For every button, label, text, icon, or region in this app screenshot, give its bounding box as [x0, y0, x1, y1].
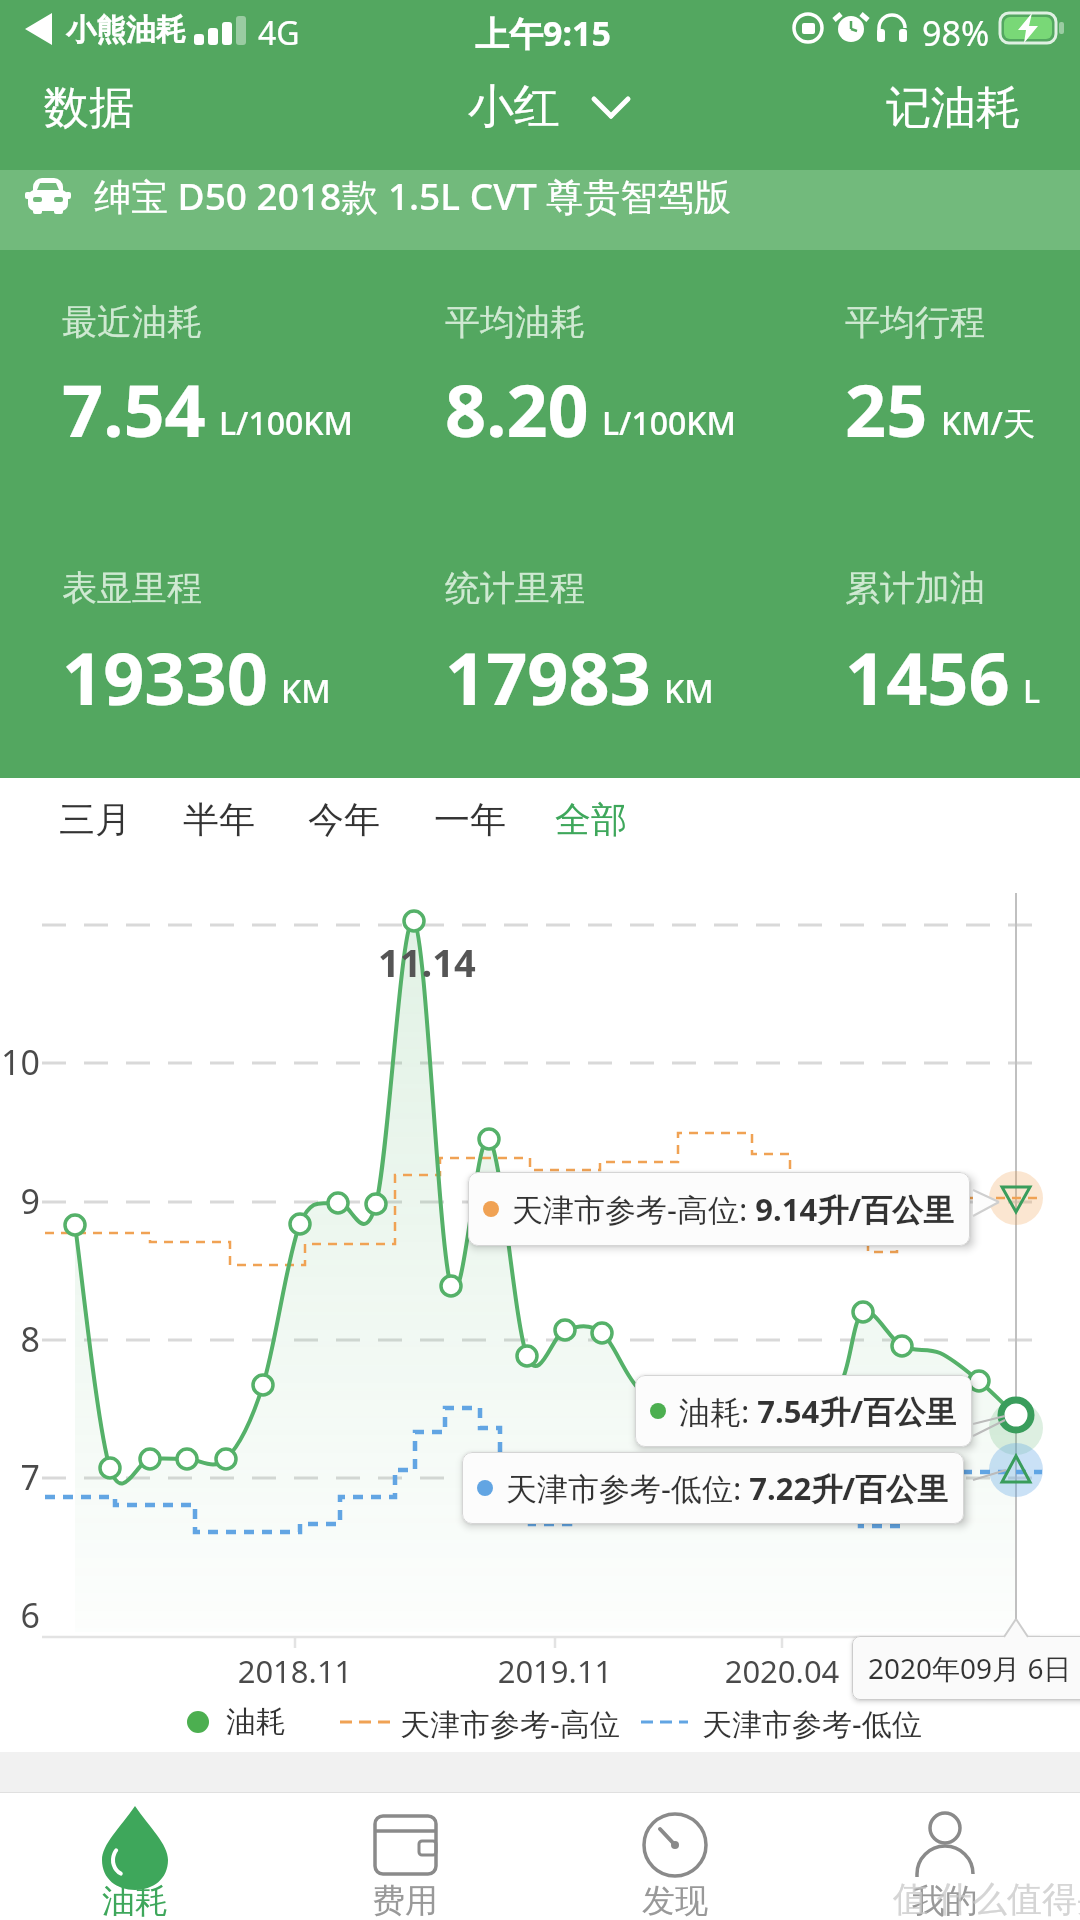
staticText: 9: [0, 1178, 40, 1224]
staticText: 油耗: [55, 1880, 215, 1920]
staticText: 2020年09月 6日: [868, 1649, 1072, 1687]
staticText: 6: [0, 1592, 40, 1638]
staticText: L: [1023, 669, 1041, 713]
staticText: 25: [845, 360, 928, 458]
staticText: 平均油耗: [445, 300, 585, 344]
staticText: 7: [0, 1454, 40, 1500]
staticText: 我的: [865, 1880, 1025, 1920]
staticText: 小红: [468, 78, 560, 136]
staticText: 17983: [445, 628, 651, 726]
staticText: 2019.11: [475, 1650, 635, 1692]
staticText: L/100KM: [219, 401, 353, 445]
staticText: 10: [0, 1039, 40, 1085]
button[interactable]: 三月: [59, 797, 131, 842]
staticText: 数据: [44, 80, 134, 137]
staticText: 半年: [183, 797, 255, 842]
button[interactable]: 数据: [44, 80, 134, 137]
button[interactable]: [845, 1796, 1045, 1918]
staticText: 油耗: 7.54升/百公里: [679, 1390, 957, 1432]
staticText: 天津市参考-低位: [702, 1703, 922, 1744]
staticText: KM: [281, 669, 331, 713]
staticText: 1456: [845, 628, 1010, 726]
button[interactable]: 半年: [183, 797, 255, 842]
staticText: KM: [664, 669, 714, 713]
button[interactable]: 绅宝 D50 2018款 1.5L CVT 尊贵智驾版: [0, 170, 1080, 250]
staticText: 7.54: [62, 360, 206, 458]
staticText: 累计加油: [845, 566, 985, 610]
staticText: KM/天: [941, 401, 1035, 445]
staticText: 值 什么值得买: [893, 1874, 1080, 1920]
staticText: 天津市参考-高位: [400, 1703, 620, 1744]
staticText: 表显里程: [62, 566, 202, 610]
button[interactable]: [305, 1796, 505, 1918]
staticText: 发现: [595, 1880, 755, 1920]
staticText: 4G: [258, 11, 300, 55]
staticText: 19330: [62, 628, 268, 726]
staticText: 2020.04: [702, 1650, 862, 1692]
staticText: 11.14: [378, 936, 476, 988]
button[interactable]: 一年: [434, 797, 506, 842]
staticText: 三月: [59, 797, 131, 842]
staticText: 2018.11: [215, 1650, 375, 1692]
button[interactable]: [35, 1796, 235, 1918]
staticText: 8.20: [445, 360, 589, 458]
staticText: 全部: [555, 797, 627, 842]
staticText: 8: [0, 1316, 40, 1362]
staticText: 记油耗: [886, 80, 1021, 137]
staticText: 统计里程: [445, 566, 585, 610]
staticText: 上午9:15: [475, 10, 611, 56]
button[interactable]: 今年: [308, 797, 380, 842]
staticText: 天津市参考-低位: 7.22升/百公里: [506, 1467, 949, 1509]
staticText: 油耗: [226, 1703, 286, 1741]
staticText: 绅宝 D50 2018款 1.5L CVT 尊贵智驾版: [94, 170, 732, 221]
button[interactable]: 小红: [468, 78, 560, 136]
staticText: 费用: [325, 1880, 485, 1920]
staticText: L/100KM: [602, 401, 736, 445]
staticText: 今年: [308, 797, 380, 842]
button[interactable]: 全部: [555, 797, 627, 842]
staticText: 98%: [922, 10, 990, 56]
staticText: 最近油耗: [62, 300, 202, 344]
staticText: 平均行程: [845, 300, 985, 344]
staticText: 小熊油耗: [66, 11, 186, 49]
staticText: 天津市参考-高位: 9.14升/百公里: [512, 1188, 955, 1230]
staticText: 一年: [434, 797, 506, 842]
button[interactable]: 记油耗: [886, 80, 1021, 137]
button[interactable]: [575, 1796, 775, 1918]
